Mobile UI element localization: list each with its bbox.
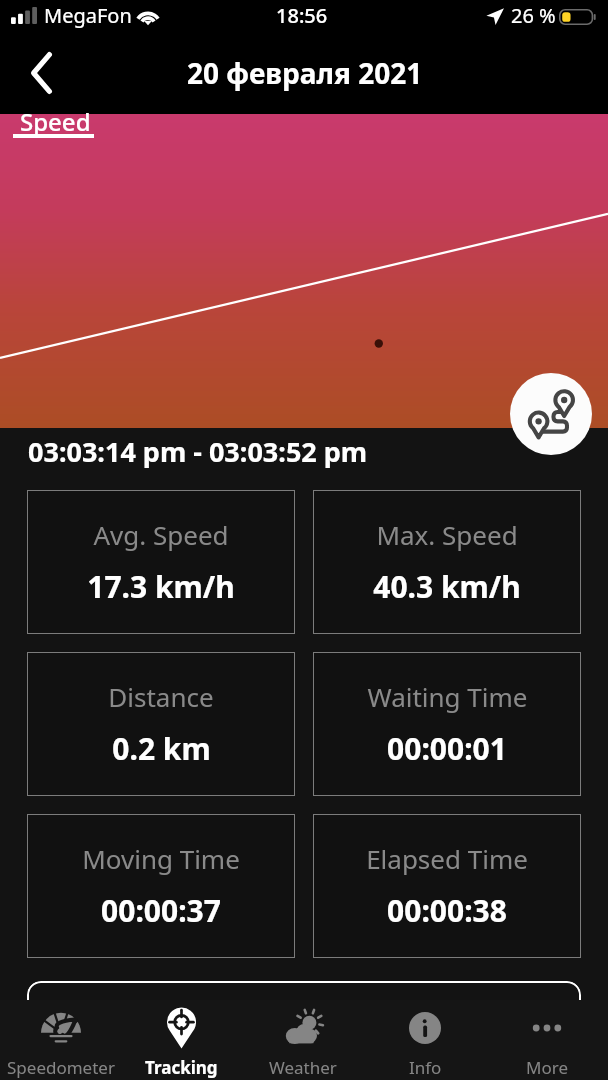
staticText: Speed	[20, 105, 91, 138]
staticText: 20 февраля 2021	[187, 54, 423, 92]
button[interactable]: Show route on map	[510, 373, 592, 455]
staticText: More	[526, 1056, 568, 1079]
staticText: Tracking	[145, 1056, 218, 1079]
button[interactable]: Tracking	[121, 1000, 242, 1080]
staticText: Weather	[269, 1056, 337, 1079]
staticText: 0.2 km	[112, 728, 211, 769]
staticText: Moving Time	[82, 841, 240, 876]
button[interactable]	[27, 981, 581, 1025]
button[interactable]: Distance	[27, 652, 295, 796]
button[interactable]: Moving Time	[27, 814, 295, 958]
button[interactable]: Elapsed Time	[313, 814, 581, 958]
button[interactable]: More	[486, 1000, 608, 1080]
button[interactable]: Max. Speed	[313, 490, 581, 634]
staticText: Elapsed Time	[366, 841, 528, 876]
staticText: 26 %	[511, 2, 556, 29]
button[interactable]: Speed	[7, 103, 94, 148]
staticText: 00:00:38	[387, 890, 507, 931]
staticText: 17.3 km/h	[87, 566, 235, 607]
button[interactable]: Weather	[242, 1000, 364, 1080]
staticText: Info	[409, 1056, 442, 1079]
staticText: Max. Speed	[376, 517, 518, 552]
staticText: 00:00:01	[387, 728, 507, 769]
staticText: 03:03:14 pm - 03:03:52 pm	[28, 433, 368, 470]
staticText: Avg. Speed	[93, 517, 229, 552]
staticText: MegaFon	[44, 2, 132, 29]
button[interactable]: Avg. Speed	[27, 490, 295, 634]
staticText: 40.3 km/h	[373, 566, 521, 607]
staticText: 00:00:37	[101, 890, 221, 931]
staticText: Speedometer	[7, 1056, 115, 1079]
staticText: Distance	[108, 679, 214, 714]
button[interactable]: Info	[364, 1000, 486, 1080]
button[interactable]: Waiting Time	[313, 652, 581, 796]
button[interactable]: Back	[18, 42, 64, 104]
button[interactable]: Speedometer	[0, 1000, 121, 1080]
staticText: Waiting Time	[367, 679, 528, 714]
staticText: 18:56	[276, 2, 328, 29]
